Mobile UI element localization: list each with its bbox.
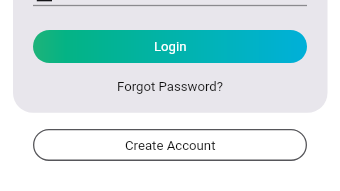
staticText: Login <box>154 39 187 54</box>
button[interactable]: Login <box>33 30 307 63</box>
button[interactable]: Create Account <box>33 129 307 161</box>
staticText: Create Account <box>125 138 216 153</box>
button[interactable]: Forgot Password? <box>33 73 307 99</box>
staticText: Forgot Password? <box>117 79 224 94</box>
